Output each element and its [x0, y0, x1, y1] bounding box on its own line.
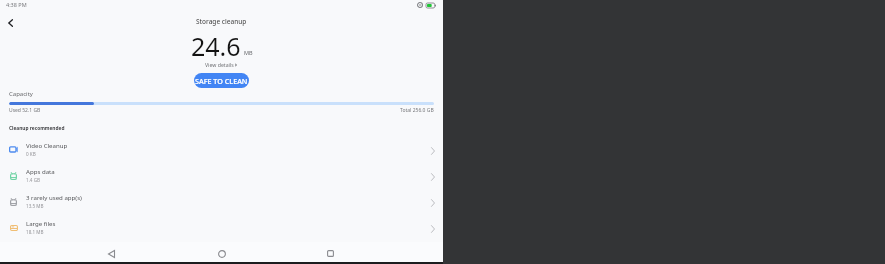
staticText: 1.4 GB — [26, 177, 41, 183]
staticText: Capacity — [9, 90, 33, 98]
staticText: 3 rarely used app(s) — [26, 193, 82, 201]
staticText: 18.1 MB — [26, 229, 44, 235]
button[interactable]: Apps data — [0, 161, 443, 187]
button[interactable]: Home — [212, 244, 231, 263]
button[interactable]: SAFE TO CLEAN — [194, 73, 249, 88]
staticText: Storage cleanup — [196, 17, 247, 26]
staticText: SAFE TO CLEAN — [195, 76, 248, 86]
staticText: MB — [244, 49, 253, 56]
staticText: Apps data — [26, 167, 55, 175]
staticText: Large files — [26, 219, 56, 227]
staticText: 24.6 — [191, 29, 241, 63]
button[interactable]: Back — [1, 13, 20, 32]
button[interactable]: Video Cleanup — [0, 135, 443, 161]
staticText: 0 KB — [26, 151, 36, 157]
button[interactable]: 3 rarely used app(s) — [0, 187, 443, 213]
staticText: Used 52.1 GB — [9, 107, 41, 114]
staticText: 13.5 MB — [26, 203, 44, 209]
button[interactable]: Recents — [321, 244, 340, 263]
staticText: 4:38 PM — [6, 1, 27, 8]
staticText: Total 256.0 GB — [400, 107, 434, 114]
button[interactable]: View details — [205, 61, 238, 68]
button[interactable]: Back — [102, 244, 121, 263]
staticText: Video Cleanup — [26, 141, 68, 149]
staticText: View details — [205, 61, 234, 68]
button[interactable]: Large files — [0, 213, 443, 239]
staticText: Cleanup recommended — [9, 125, 65, 132]
